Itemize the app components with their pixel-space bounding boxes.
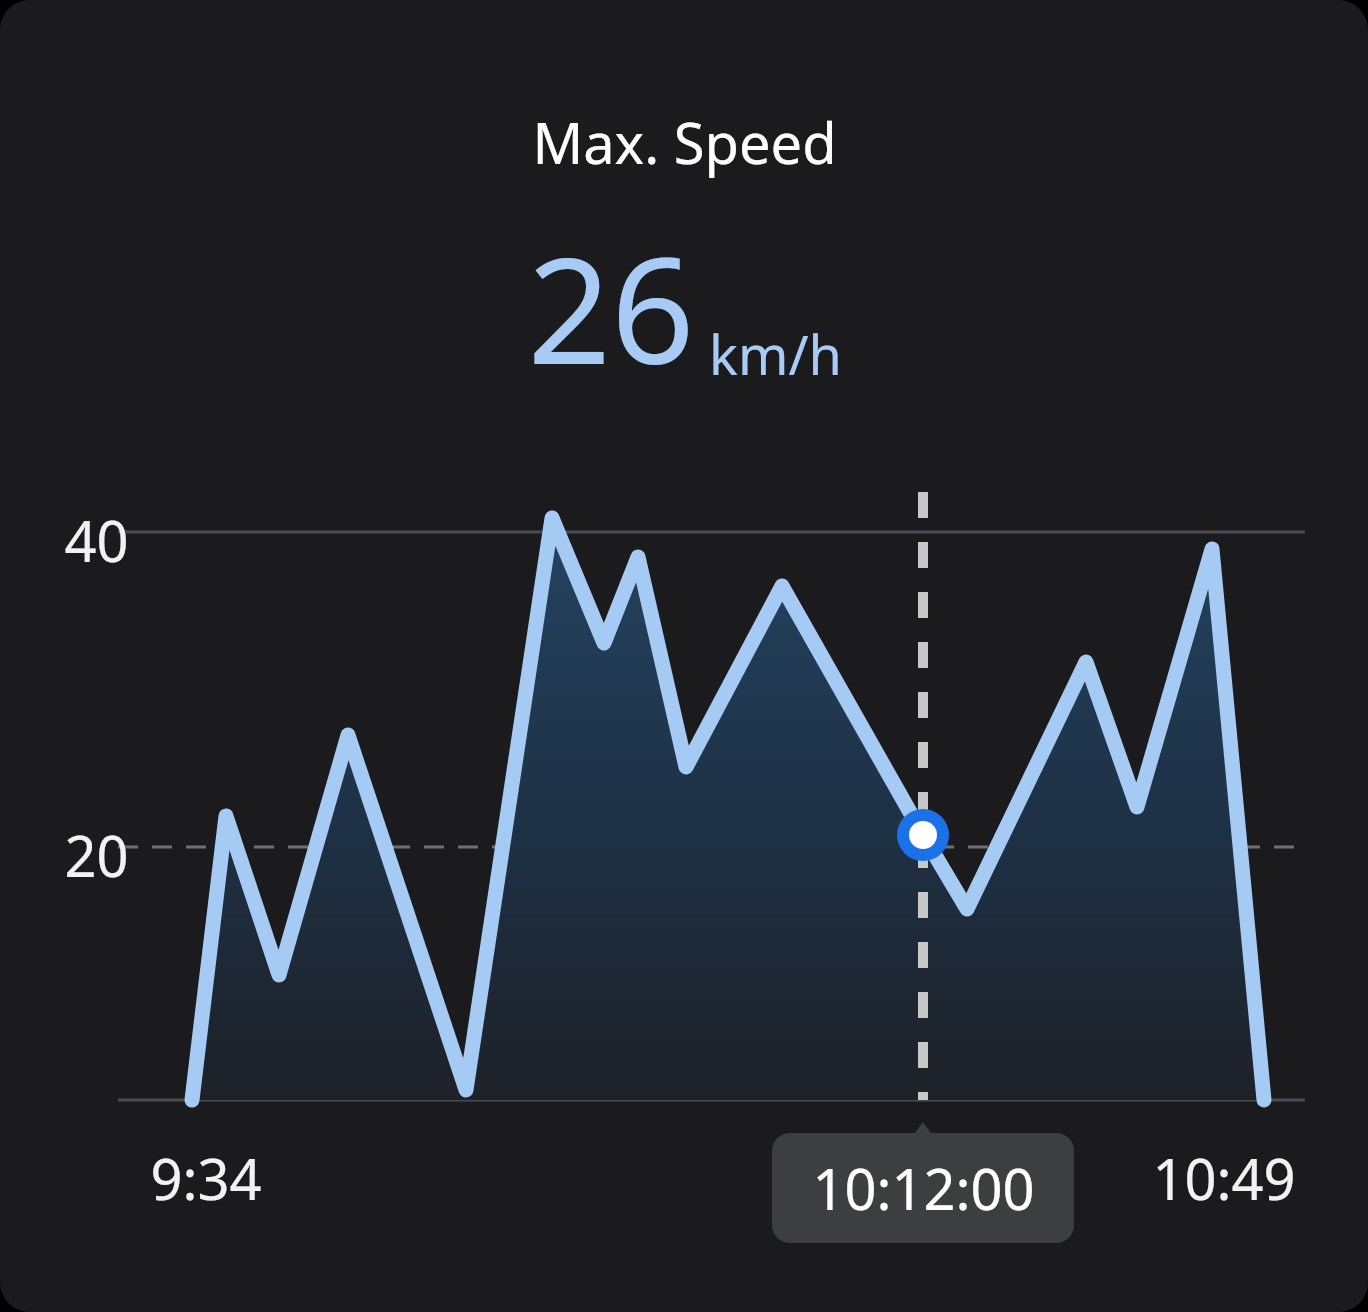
staticText: 10:12:00 [812,1150,1035,1226]
staticText: 26 [527,208,695,407]
staticText: Max. Speed [532,104,837,180]
staticText: 10:49 [1152,1140,1296,1216]
staticText: 20 [64,817,129,893]
button[interactable]: Max speed chart [0,0,1368,1312]
button[interactable]: 10:12:00 [772,1133,1074,1243]
staticText: 40 [64,502,129,578]
staticText: km/h [709,317,842,391]
staticText: 9:34 [150,1140,262,1216]
